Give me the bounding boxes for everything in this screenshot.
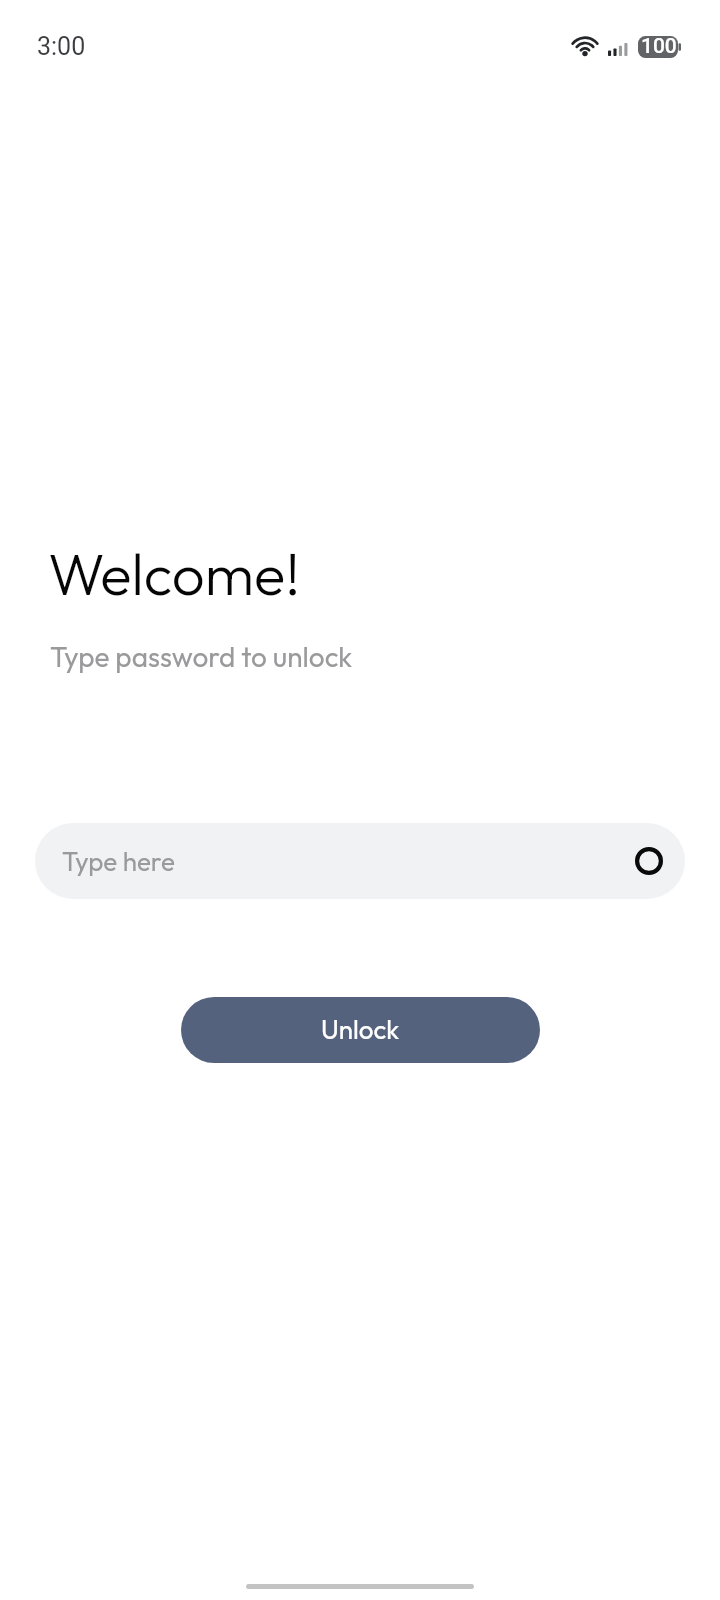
staticText: Type password to unlock — [50, 639, 353, 674]
staticText: Unlock — [321, 1013, 400, 1046]
button[interactable]: Show password — [625, 837, 673, 885]
staticText: Type here — [62, 845, 175, 878]
staticText: Welcome! — [48, 537, 301, 610]
button[interactable]: Unlock — [181, 997, 540, 1063]
staticText: 100 — [641, 34, 677, 59]
button[interactable]: Type here — [35, 823, 685, 899]
staticText: 3:00 — [37, 32, 86, 61]
